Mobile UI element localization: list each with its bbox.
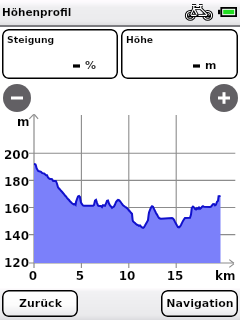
other: Akku: [218, 7, 237, 17]
staticText: 5: [68, 269, 92, 283]
staticText: 180: [1, 175, 29, 189]
staticText: 120: [1, 256, 29, 270]
staticText: Höhe: [126, 34, 154, 45]
button[interactable]: Navigation: [161, 290, 238, 317]
staticText: km: [215, 269, 236, 283]
staticText: m: [205, 59, 217, 72]
button[interactable]: Zurück: [2, 290, 78, 317]
staticText: Navigation: [166, 297, 234, 310]
staticText: 10: [115, 269, 139, 283]
staticText: 0: [21, 269, 45, 283]
staticText: Steigung: [7, 34, 55, 45]
staticText: 200: [1, 148, 29, 162]
button[interactable]: Höhe: [121, 29, 238, 79]
staticText: 140: [1, 229, 29, 243]
staticText: 160: [1, 202, 29, 216]
staticText: m: [17, 115, 30, 129]
staticText: Höhenprofil: [2, 6, 72, 18]
staticText: 15: [163, 269, 187, 283]
button[interactable]: Zoom in: [210, 84, 238, 112]
other: Fahrrad: [186, 4, 212, 20]
button[interactable]: Zoom out: [3, 84, 31, 112]
staticText: Zurück: [19, 297, 62, 310]
staticText: %: [85, 59, 97, 72]
button[interactable]: Steigung: [2, 29, 118, 79]
